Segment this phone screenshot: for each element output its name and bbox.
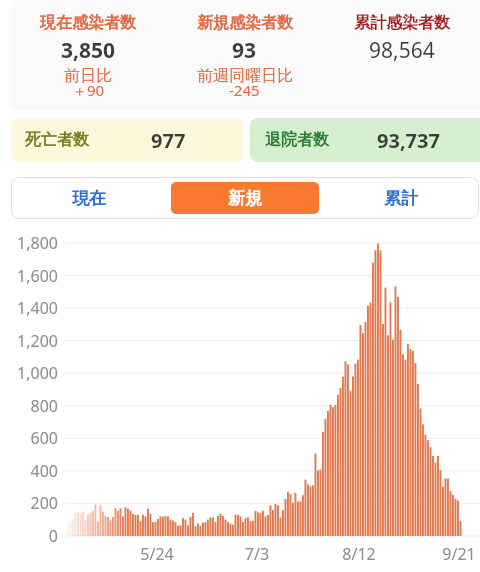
staticText: 400 (0, 460, 58, 482)
staticText: 累計感染者数 (354, 13, 450, 33)
staticText: 8/12 (319, 543, 399, 565)
staticText: 累計 (384, 188, 418, 209)
staticText: 7/3 (217, 543, 297, 565)
staticText: 新規感染者数 (197, 13, 293, 33)
staticText: 1,400 (0, 297, 58, 319)
button[interactable]: 退院者数 (250, 118, 480, 162)
staticText: 現在感染者数 (40, 13, 136, 33)
staticText: 1,600 (0, 265, 58, 287)
staticText: 1,200 (0, 330, 58, 352)
staticText: 新規 (228, 188, 262, 209)
staticText: -245 (229, 80, 260, 100)
staticText: 93 (232, 36, 257, 65)
staticText: 800 (0, 395, 58, 417)
staticText: 5/24 (117, 543, 197, 565)
staticText: 前日比 (64, 66, 112, 86)
staticText: 1,800 (0, 232, 58, 254)
button[interactable]: 現在 (15, 182, 163, 214)
staticText: 977 (151, 127, 186, 154)
staticText: ＋90 (72, 80, 105, 100)
staticText: 退院者数 (265, 130, 329, 150)
staticText: 死亡者数 (25, 130, 89, 150)
staticText: 600 (0, 427, 58, 449)
button[interactable]: 死亡者数 (11, 118, 243, 162)
staticText: 3,850 (61, 36, 116, 65)
staticText: 前週同曜日比 (197, 66, 293, 86)
staticText: 0 (0, 525, 58, 547)
staticText: 200 (0, 492, 58, 514)
staticText: 93,737 (377, 127, 440, 154)
button[interactable]: 新規 (171, 182, 319, 214)
staticText: 98,564 (369, 36, 435, 65)
staticText: 1,000 (0, 362, 58, 384)
button[interactable]: 累計 (327, 182, 475, 214)
staticText: 9/21 (419, 543, 480, 565)
staticText: 現在 (72, 188, 106, 209)
